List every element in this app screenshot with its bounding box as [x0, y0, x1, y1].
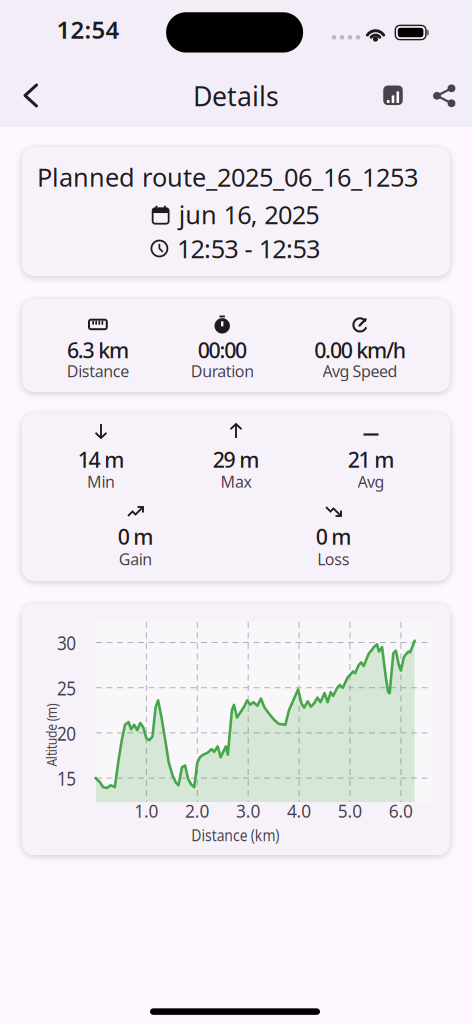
- staticText: 20: [55, 720, 77, 746]
- staticText: 0 m: [316, 522, 351, 551]
- staticText: 15: [55, 765, 77, 791]
- staticText: 4.0: [287, 799, 311, 822]
- staticText: Max: [220, 471, 251, 492]
- staticText: Avg Speed: [322, 360, 397, 382]
- staticText: 14 m: [78, 445, 124, 474]
- button[interactable]: [8, 73, 52, 117]
- staticText: Gain: [119, 548, 152, 570]
- staticText: Distance (km): [185, 824, 286, 846]
- staticText: 1.0: [134, 799, 159, 822]
- staticText: 12:54: [56, 14, 119, 45]
- staticText: Loss: [317, 548, 350, 570]
- staticText: Distance: [67, 360, 129, 382]
- staticText: 2.0: [185, 799, 209, 822]
- staticText: 3.0: [236, 799, 260, 822]
- staticText: 25: [55, 674, 77, 701]
- button[interactable]: [373, 75, 413, 115]
- staticText: 12:53 - 12:53: [177, 232, 320, 265]
- staticText: Min: [87, 471, 115, 492]
- staticText: Duration: [191, 360, 254, 382]
- button[interactable]: [424, 76, 464, 116]
- staticText: 0.00 km/h: [314, 336, 406, 364]
- staticText: 5.0: [338, 799, 362, 822]
- staticText: jun 16, 2025: [179, 198, 319, 231]
- staticText: Details: [193, 78, 279, 113]
- staticText: 0 m: [118, 522, 153, 551]
- staticText: 30: [55, 629, 77, 656]
- staticText: 29 m: [213, 445, 259, 474]
- staticText: Altitude (m): [13, 725, 89, 745]
- staticText: Planned route_2025_06_16_1253: [37, 160, 418, 194]
- staticText: Avg: [357, 471, 384, 492]
- staticText: 6.0: [389, 799, 413, 822]
- staticText: 21 m: [348, 445, 394, 474]
- staticText: 00:00: [198, 336, 247, 364]
- staticText: 6.3 km: [67, 336, 129, 364]
